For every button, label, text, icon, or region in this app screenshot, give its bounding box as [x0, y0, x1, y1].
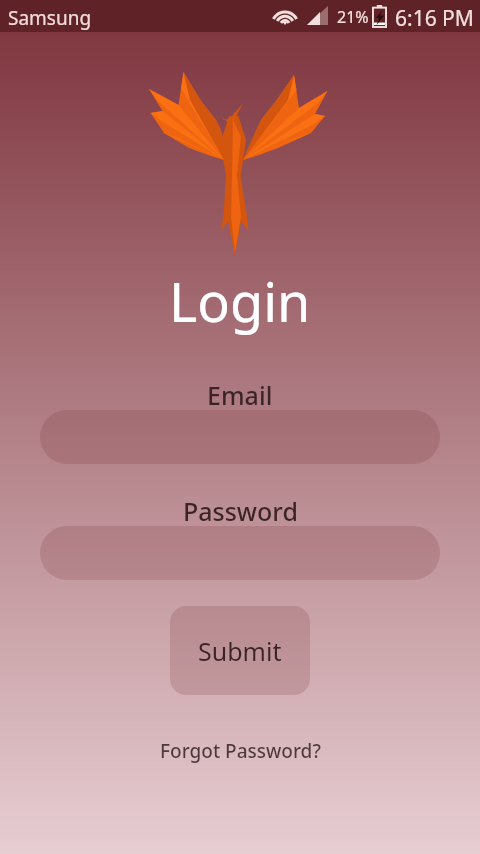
staticText: Forgot Password?	[160, 738, 321, 764]
button[interactable]: Submit	[170, 606, 310, 695]
staticText: 21%	[337, 6, 369, 28]
staticText: Samsung	[8, 5, 92, 31]
button[interactable]: Forgot Password?	[150, 734, 331, 768]
staticText: Password	[183, 494, 298, 528]
staticText: Submit	[198, 634, 282, 668]
staticText: Email	[207, 378, 273, 412]
staticText: Login	[169, 264, 311, 338]
staticText: 6:16 PM	[395, 4, 474, 33]
button[interactable]: Password input	[40, 526, 440, 580]
button[interactable]: Email input	[40, 410, 440, 464]
